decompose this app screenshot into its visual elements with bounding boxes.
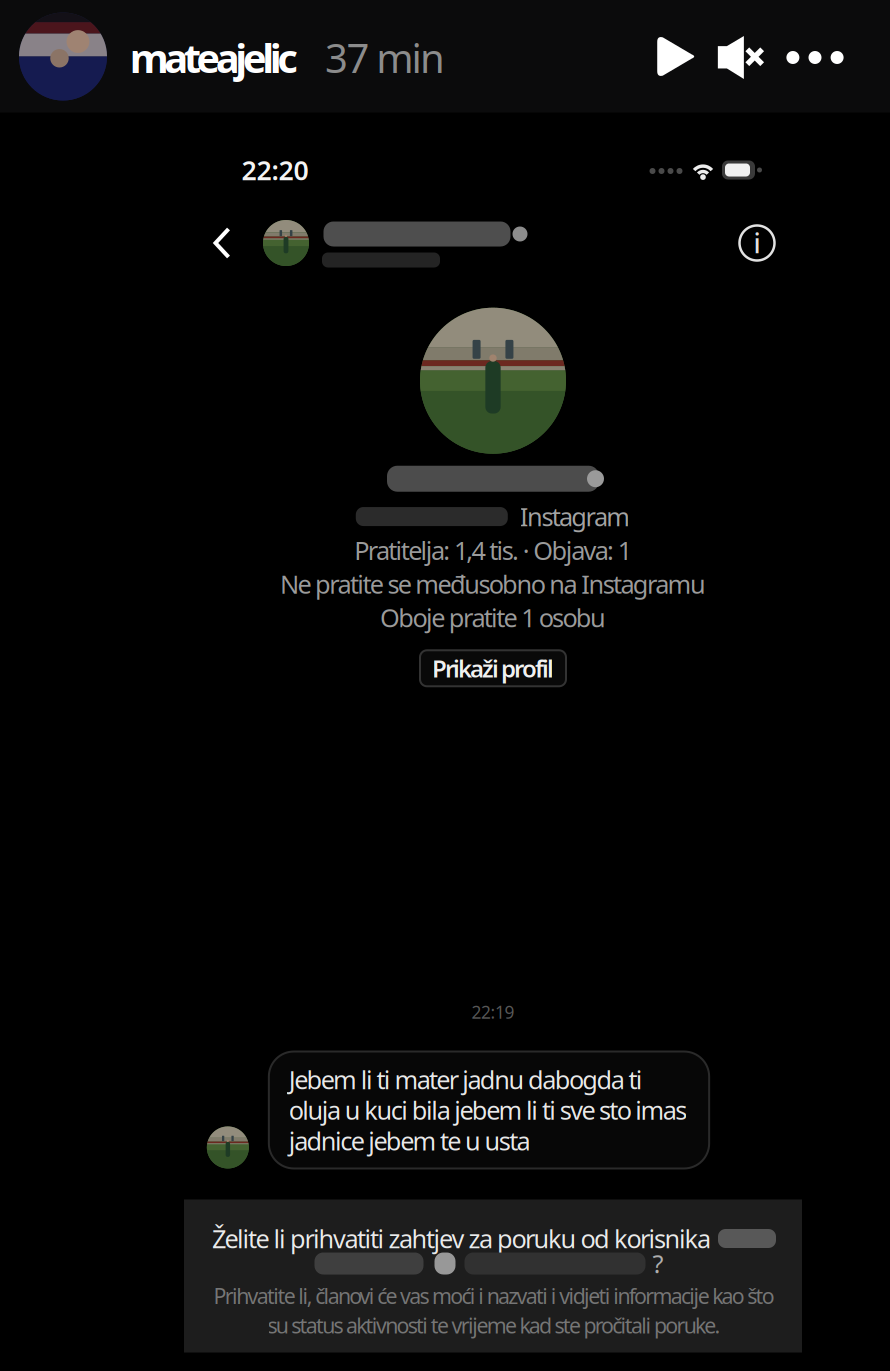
button[interactable]: Conversation info: [732, 218, 782, 268]
button[interactable]: More options: [775, 22, 855, 92]
staticText: 37 min: [325, 31, 445, 84]
button[interactable]: Prikaži profil: [420, 650, 566, 686]
button[interactable]: Unmute: [709, 21, 771, 93]
staticText: Želite li prihvatiti zahtjev za poruku o…: [212, 1222, 711, 1255]
staticText: Prikaži profil: [432, 652, 554, 684]
button[interactable]: Back: [196, 217, 248, 269]
staticText: Prihvatite li, članovi će vas moći i naz…: [213, 1282, 775, 1310]
staticText: Instagram: [520, 500, 630, 533]
staticText: 22:20: [241, 152, 308, 188]
staticText: mateajelic: [130, 31, 298, 84]
staticText: Ne pratite se međusobno na Instagramu: [280, 567, 706, 601]
staticText: ?: [652, 1247, 663, 1280]
staticText: jadnice jebem te u usta: [289, 1124, 530, 1157]
staticText: i: [753, 225, 760, 261]
staticText: Oboje pratite 1 osobu: [380, 601, 606, 634]
staticText: Jebem li ti mater jadnu dabogda ti: [289, 1062, 643, 1096]
staticText: oluja u kuci bila jebem li ti sve sto im…: [289, 1093, 687, 1127]
staticText: Pratitelja: 1,4 tis. · Objava: 1: [354, 533, 632, 567]
staticText: 22:19: [471, 1000, 514, 1023]
staticText: su status aktivnosti te vrijeme kad ste …: [267, 1311, 720, 1339]
button[interactable]: Play: [645, 20, 709, 92]
